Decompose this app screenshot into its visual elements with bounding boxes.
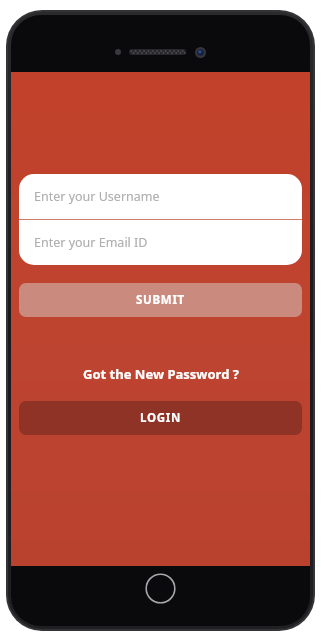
button[interactable]: Enter your Username (19, 174, 302, 219)
button[interactable]: Home (145, 573, 176, 604)
staticText: LOGIN (140, 410, 181, 426)
staticText: Got the New Password ? (83, 365, 239, 383)
staticText: SUBMIT (136, 292, 185, 308)
button[interactable]: SUBMIT (19, 283, 302, 317)
staticText: Enter your Username (34, 188, 160, 205)
button[interactable]: Enter your Email ID (19, 220, 302, 265)
button[interactable]: Got the New Password ? (19, 361, 302, 387)
staticText: Enter your Email ID (34, 234, 148, 251)
button[interactable]: LOGIN (19, 401, 302, 435)
